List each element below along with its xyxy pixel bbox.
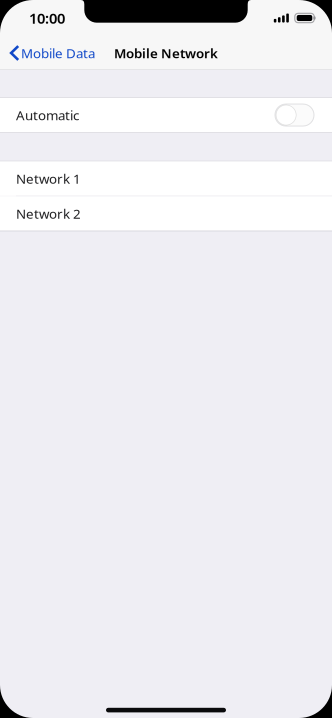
button[interactable]: Network 2 — [0, 196, 332, 231]
staticText: Mobile Data — [21, 44, 95, 62]
staticText: Network 1 — [16, 170, 81, 187]
staticText: Network 2 — [16, 205, 81, 222]
button[interactable]: Network 1 — [0, 161, 332, 196]
button[interactable]: Automatic — [0, 98, 332, 132]
button[interactable]: Mobile Data — [0, 36, 103, 70]
staticText: Automatic — [16, 106, 79, 124]
staticText: Mobile Network — [114, 44, 218, 62]
staticText: 10:00 — [29, 8, 65, 28]
